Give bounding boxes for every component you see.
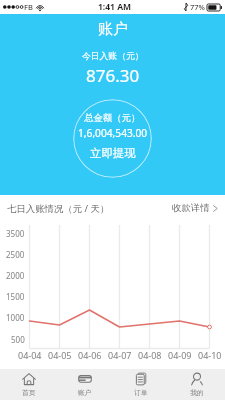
staticText: 2000: [6, 270, 25, 281]
staticText: 2500: [6, 249, 25, 260]
other: 首页: [22, 372, 36, 386]
button[interactable]: 收款详情: [172, 202, 218, 214]
staticText: 1,6,004,543.00: [78, 126, 148, 140]
other: 我的: [190, 372, 204, 386]
staticText: 收款详情: [172, 202, 210, 214]
staticText: 04-07: [108, 349, 132, 361]
staticText: 1500: [6, 291, 25, 302]
staticText: 77%: [190, 2, 205, 12]
staticText: 876.30: [86, 64, 140, 87]
staticText: 04-10: [198, 349, 222, 361]
staticText: 04-05: [48, 349, 72, 361]
staticText: 订单: [134, 388, 148, 397]
staticText: 1000: [6, 312, 25, 323]
staticText: 七日入账情况（元 / 天）: [7, 202, 110, 215]
button[interactable]: 账户: [57, 369, 113, 400]
staticText: 我的: [190, 388, 204, 397]
staticText: 1:41 AM: [98, 1, 132, 13]
other: 账户: [78, 372, 92, 386]
staticText: 04-09: [168, 349, 192, 361]
button[interactable]: 订单: [113, 369, 169, 400]
staticText: 04-06: [78, 349, 102, 361]
button[interactable]: 我的: [169, 369, 225, 400]
staticText: 04-04: [18, 349, 42, 361]
staticText: 账户: [78, 388, 92, 397]
button[interactable]: 首页: [0, 369, 57, 400]
other: 订单: [134, 372, 148, 386]
button[interactable]: 总金额（元）: [73, 99, 152, 178]
staticText: FB: [24, 2, 33, 12]
staticText: 3500: [6, 228, 25, 239]
staticText: 账户: [98, 20, 128, 39]
staticText: 04-08: [138, 349, 162, 361]
staticText: 500: [11, 334, 25, 345]
staticText: 总金额（元）: [84, 112, 141, 124]
staticText: 今日入账（元）: [82, 51, 144, 62]
staticText: 首页: [22, 388, 36, 397]
staticText: 立即提现: [90, 146, 136, 160]
